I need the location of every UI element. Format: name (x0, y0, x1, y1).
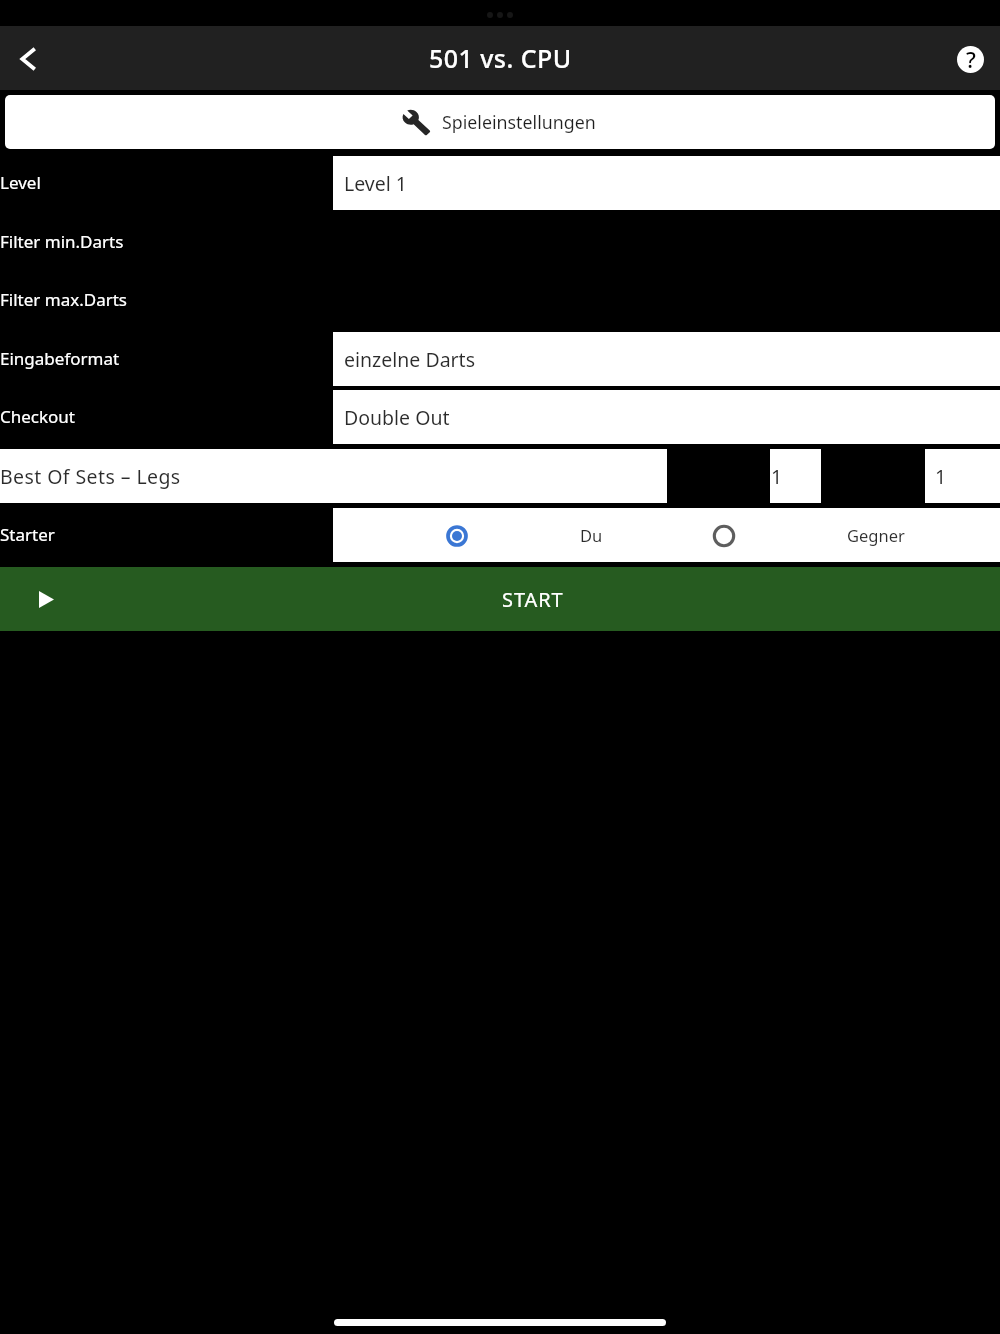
staticText: 1 (935, 463, 947, 490)
staticText: Filter min.Darts (0, 230, 124, 253)
staticText: Level 1 (344, 170, 407, 197)
staticText: einzelne Darts (344, 346, 476, 373)
button[interactable]: Du (333, 508, 623, 562)
staticText: START (502, 586, 564, 613)
staticText: Du (580, 524, 603, 546)
staticText: Starter (0, 523, 55, 546)
button[interactable]: Eingabeformat (0, 332, 1000, 386)
staticText: Gegner (847, 524, 905, 546)
button[interactable]: START (0, 567, 1000, 631)
staticText: Level (0, 171, 41, 194)
button[interactable]: Back (0, 26, 54, 90)
staticText: Double Out (344, 404, 450, 431)
button[interactable]: Level (0, 156, 1000, 210)
button[interactable]: Best Of Sets – Legs (0, 449, 667, 503)
button[interactable]: Filter max.Darts (0, 272, 333, 326)
button[interactable]: 1 (770, 449, 821, 503)
button[interactable]: Starter (0, 507, 333, 561)
staticText: Spieleinstellungen (442, 110, 596, 134)
button[interactable]: Spieleinstellungen (5, 95, 995, 149)
button[interactable]: 1 (925, 449, 1000, 503)
staticText: 501 vs. CPU (429, 41, 572, 75)
button[interactable]: Checkout (0, 390, 1000, 444)
button[interactable]: Gegner (623, 508, 973, 562)
staticText: Best Of Sets – Legs (0, 463, 181, 490)
staticText: Checkout (0, 405, 76, 428)
staticText: 1 (771, 463, 783, 490)
staticText: ? (966, 46, 976, 71)
button[interactable]: Filter min.Darts (0, 214, 333, 268)
button[interactable]: Help (957, 46, 984, 73)
staticText: Filter max.Darts (0, 288, 127, 311)
staticText: Eingabeformat (0, 347, 120, 370)
